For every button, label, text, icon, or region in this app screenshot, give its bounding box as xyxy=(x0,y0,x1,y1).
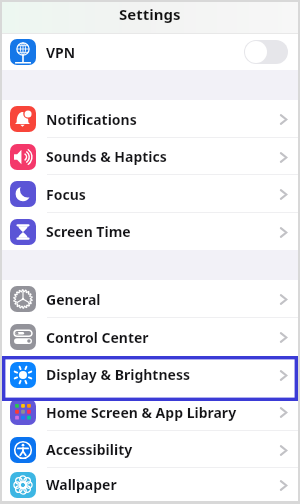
staticText: Focus xyxy=(46,185,86,204)
button[interactable]: Home Screen & App Library xyxy=(2,393,298,431)
staticText: Wallpaper xyxy=(46,475,117,494)
button[interactable]: Display & Brightness xyxy=(2,356,298,393)
button[interactable]: Focus xyxy=(2,175,298,213)
staticText: Home Screen & App Library xyxy=(46,403,237,422)
button[interactable]: Accessibility xyxy=(2,431,298,468)
button[interactable]: Control Center xyxy=(2,318,298,356)
button[interactable]: Wallpaper xyxy=(2,468,298,501)
staticText: Settings xyxy=(119,4,181,24)
staticText: Notifications xyxy=(46,110,137,129)
button[interactable]: Sounds & Haptics xyxy=(2,138,298,175)
button[interactable]: VPN xyxy=(2,34,298,70)
staticText: Accessibility xyxy=(46,440,133,459)
staticText: Display & Brightness xyxy=(46,365,190,384)
staticText: General xyxy=(46,290,101,309)
button[interactable]: Notifications xyxy=(2,100,298,138)
button[interactable]: General xyxy=(2,280,298,318)
staticText: Screen Time xyxy=(46,222,131,241)
staticText: VPN xyxy=(46,43,76,62)
staticText: Sounds & Haptics xyxy=(46,147,167,166)
staticText: Control Center xyxy=(46,328,149,347)
button[interactable]: VPN toggle xyxy=(244,40,288,64)
button[interactable]: Screen Time xyxy=(2,213,298,250)
